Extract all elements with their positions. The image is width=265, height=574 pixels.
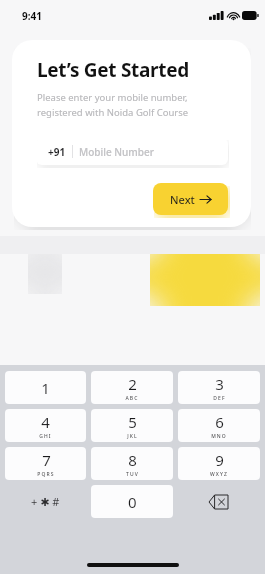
staticText: 3 [215, 374, 224, 394]
staticText: DEF [213, 395, 226, 402]
button[interactable]: 5 [91, 409, 173, 442]
staticText: JKL [127, 433, 138, 440]
staticText: 9 [215, 450, 224, 470]
button[interactable]: Plus star hash [5, 485, 86, 518]
button[interactable]: Next [153, 183, 228, 215]
staticText: Let’s Get Started [37, 57, 189, 83]
staticText: PQRS [37, 471, 55, 478]
staticText: 7 [42, 450, 51, 470]
staticText: GHI [39, 433, 52, 440]
button[interactable]: Backspace [178, 485, 260, 518]
button[interactable]: 9 [178, 447, 260, 480]
button[interactable]: 1 [5, 371, 86, 404]
staticText: 0 [128, 492, 137, 512]
staticText: 4 [41, 412, 50, 432]
staticText: + ✱ # [31, 494, 60, 509]
staticText: 5 [128, 412, 137, 432]
staticText: MNO [211, 433, 227, 440]
button[interactable]: 0 [91, 485, 173, 518]
button[interactable]: 4 [5, 409, 86, 442]
staticText: 8 [128, 450, 137, 470]
button[interactable]: 6 [178, 409, 260, 442]
staticText: 9:41 [22, 9, 42, 23]
staticText: 1 [41, 378, 50, 398]
staticText: 6 [215, 412, 224, 432]
button[interactable]: 3 [178, 371, 260, 404]
staticText: TUV [126, 471, 139, 478]
staticText: 2 [128, 374, 137, 394]
button[interactable]: +91 [36, 138, 228, 165]
staticText: WXYZ [210, 471, 228, 478]
staticText: +91 [48, 145, 66, 159]
button[interactable]: 8 [91, 447, 173, 480]
staticText: Next [170, 192, 195, 207]
staticText: Please enter your mobile number, registe… [37, 91, 189, 119]
button[interactable]: 7 [5, 447, 86, 480]
staticText: Mobile Number [79, 145, 154, 159]
button[interactable]: 2 [91, 371, 173, 404]
staticText: ABC [125, 395, 139, 402]
